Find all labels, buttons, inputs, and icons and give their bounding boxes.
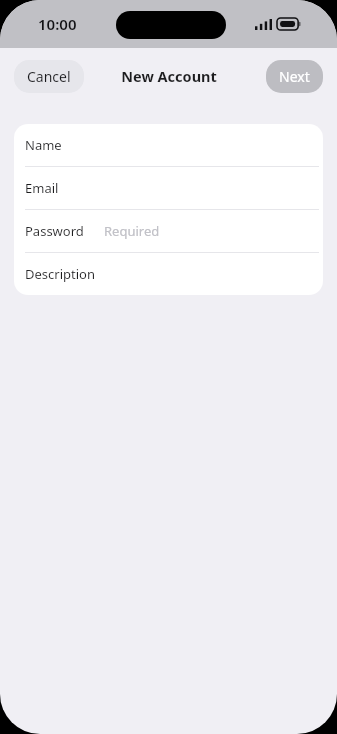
button[interactable]: Description	[14, 253, 323, 295]
staticText: Next	[279, 67, 310, 86]
button[interactable]: Name	[14, 124, 323, 166]
staticText: New Account	[121, 66, 217, 86]
staticText: Cancel	[27, 67, 71, 86]
staticText: Name	[25, 136, 62, 154]
button[interactable]: Password	[14, 210, 323, 252]
button[interactable]: Next	[266, 60, 323, 93]
staticText: 10:00	[38, 14, 77, 34]
button[interactable]: Email	[14, 167, 323, 209]
staticText: Required	[104, 222, 160, 240]
button[interactable]: Cancel	[14, 60, 84, 93]
staticText: Description	[25, 265, 95, 283]
staticText: Email	[25, 179, 59, 197]
staticText: Password	[25, 222, 84, 240]
